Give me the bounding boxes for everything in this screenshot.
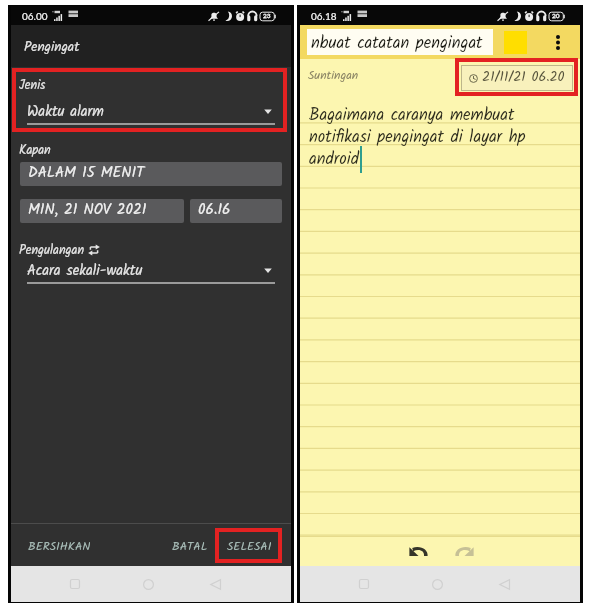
button[interactable]: Redo (449, 536, 479, 566)
staticText: 06.16 (198, 199, 231, 222)
button[interactable]: Back (490, 566, 518, 602)
button[interactable]: BATAL (164, 529, 216, 564)
staticText: Suntingan (308, 66, 359, 85)
button[interactable]: Recents (350, 566, 378, 602)
button[interactable]: 21/11/21 06.20 (461, 65, 573, 91)
staticText: MIN, 21 NOV 2021 (28, 199, 147, 222)
staticText: nbuat catatan pengingat (311, 30, 483, 56)
button[interactable]: DALAM 15 MENIT (20, 162, 282, 186)
staticText: BERSIHKAN (28, 537, 91, 556)
staticText: 23 (263, 12, 271, 20)
button[interactable]: Acara sekali-waktu (11, 259, 291, 284)
staticText: Kapan (19, 141, 51, 161)
button[interactable]: Home (134, 566, 162, 602)
button[interactable]: MIN, 21 NOV 2021 (20, 199, 184, 223)
button[interactable]: Waktu alarm (11, 100, 291, 125)
staticText: BATAL (172, 537, 208, 556)
staticText: SELESAI (227, 537, 272, 556)
staticText: Acara sekali-waktu (27, 260, 143, 283)
staticText: Bagaimana caranya membuat notifikasi pen… (309, 102, 526, 172)
staticText: Pengulangan (19, 241, 85, 261)
staticText: 06.00 (22, 10, 48, 22)
staticText: 21/11/21 06.20 (482, 66, 565, 88)
button[interactable]: Back (201, 566, 229, 602)
staticText: Jenis (19, 76, 46, 96)
button[interactable]: Home (423, 566, 451, 602)
staticText: 20 (552, 12, 560, 20)
button[interactable]: More options (546, 25, 570, 59)
button[interactable]: Recents (61, 566, 89, 602)
button[interactable]: Undo (403, 536, 433, 566)
button[interactable]: nbuat catatan pengingat (307, 29, 493, 55)
button[interactable]: 06.16 (190, 199, 282, 223)
button[interactable]: SELESAI (219, 529, 280, 564)
staticText: 06.18 (311, 10, 337, 22)
staticText: Pengingat (24, 37, 80, 59)
staticText: DALAM 15 MENIT (28, 162, 145, 185)
button[interactable]: BERSIHKAN (20, 529, 99, 564)
staticText: Waktu alarm (27, 101, 104, 124)
